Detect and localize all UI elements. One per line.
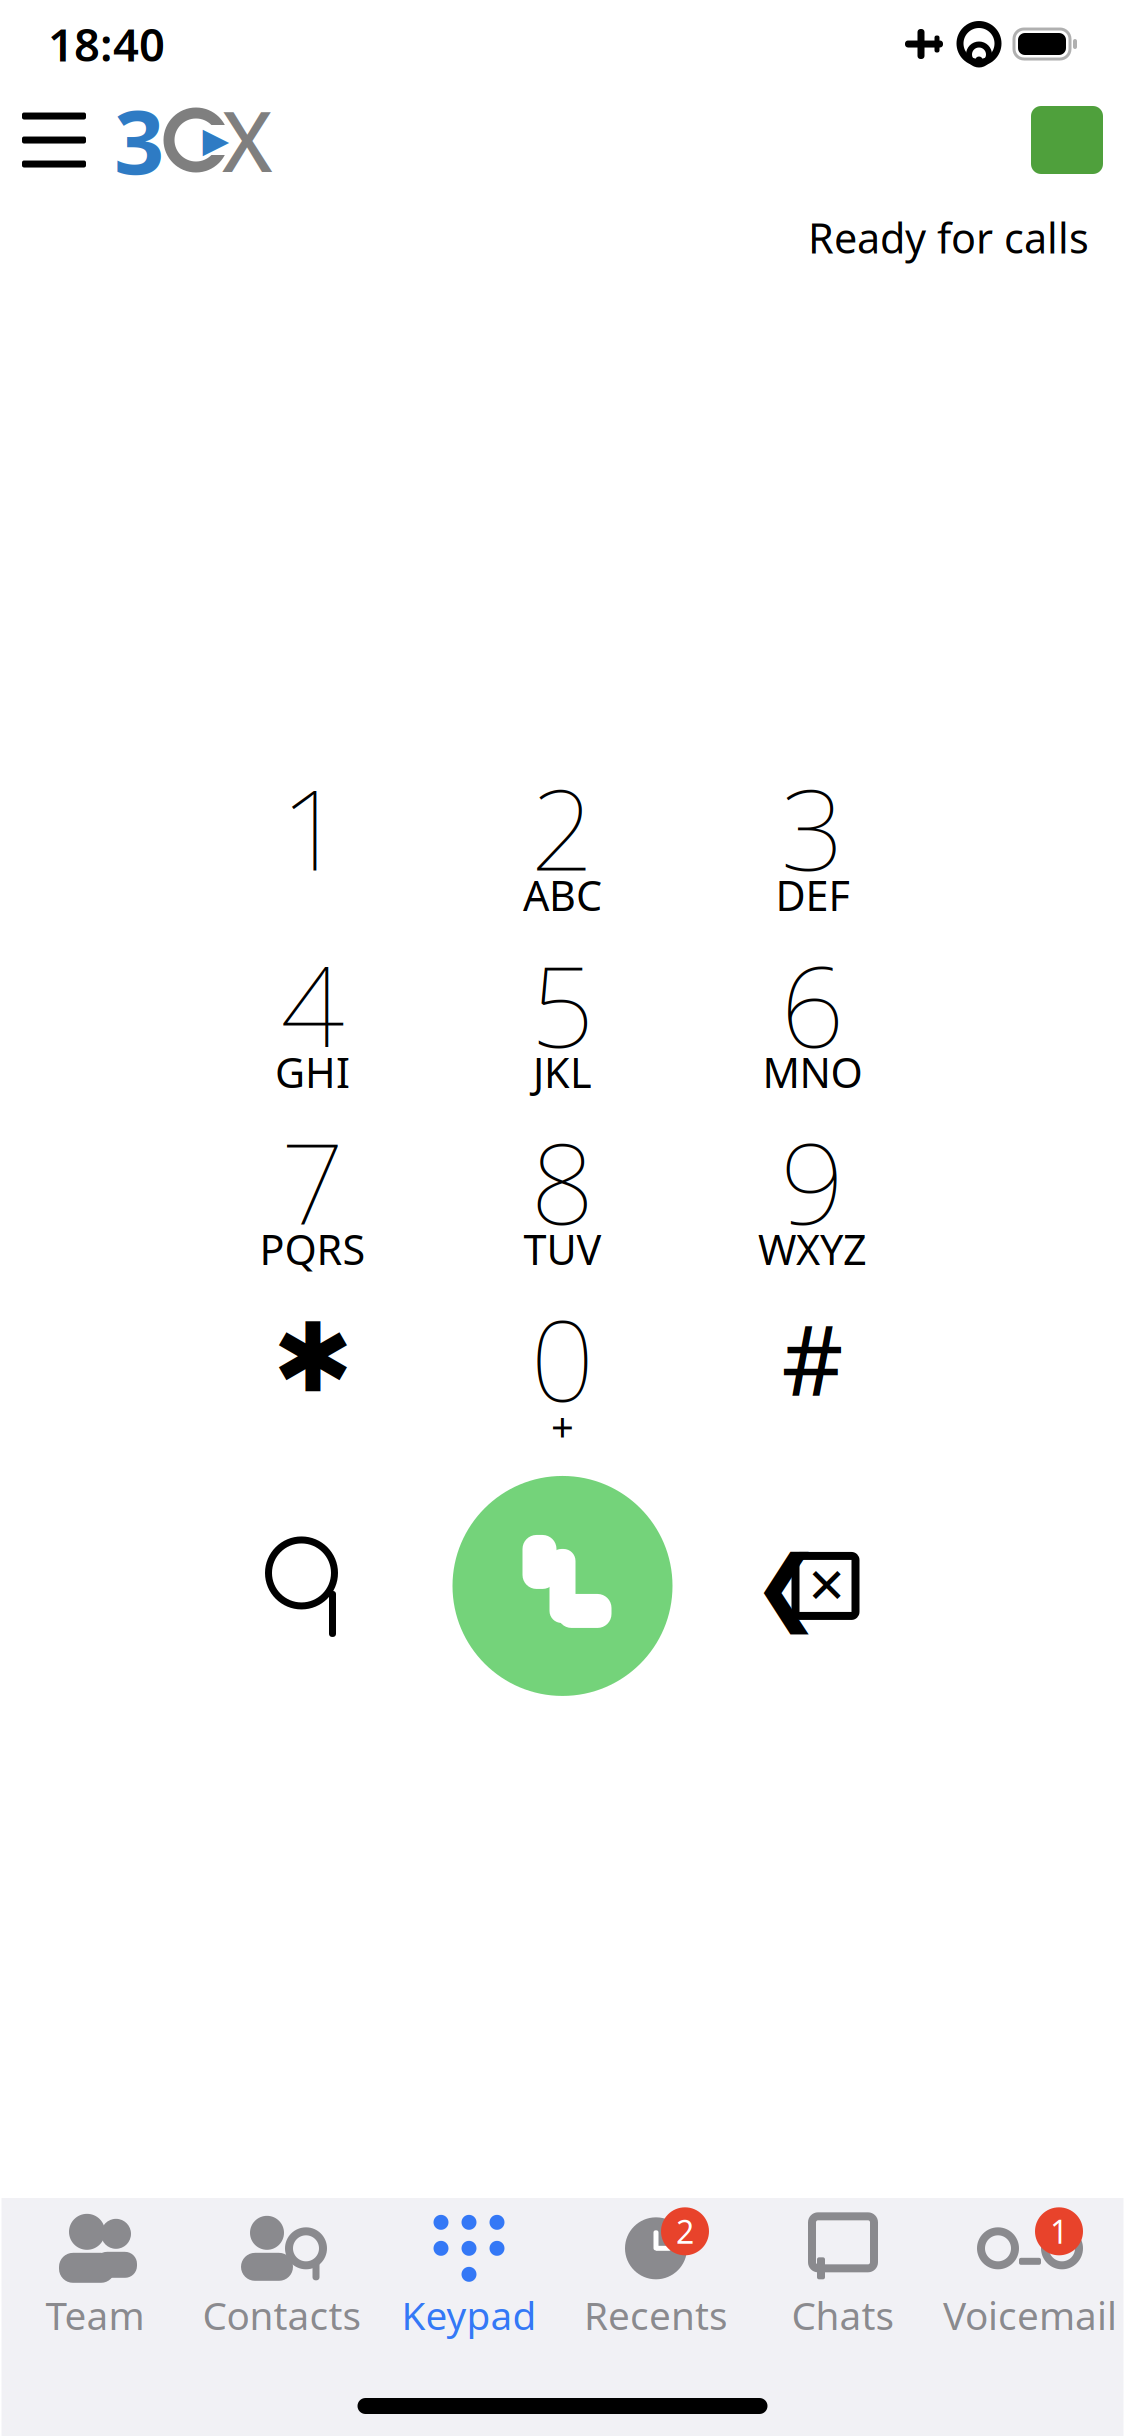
- button[interactable]: Presence status: [1009, 92, 1125, 188]
- staticText: ▶: [202, 120, 229, 160]
- staticText: TUV: [523, 1221, 601, 1276]
- staticText: JKL: [533, 1044, 592, 1099]
- staticText: 0: [530, 1284, 594, 1432]
- staticText: Ready for calls: [808, 210, 1089, 265]
- staticText: 2: [676, 2210, 694, 2253]
- button[interactable]: 8: [437, 1126, 687, 1276]
- button[interactable]: 9: [687, 1126, 937, 1276]
- staticText: 3: [780, 753, 844, 901]
- button[interactable]: Search: [187, 1471, 437, 1701]
- button[interactable]: 7: [187, 1126, 437, 1276]
- button[interactable]: Call: [437, 1471, 687, 1701]
- staticText: Contacts: [202, 2289, 361, 2341]
- staticText: PQRS: [259, 1221, 365, 1276]
- staticText: Recents: [584, 2289, 728, 2341]
- button[interactable]: 5: [437, 949, 687, 1099]
- button[interactable]: 4: [187, 949, 437, 1099]
- staticText: ✕: [806, 1559, 846, 1613]
- button[interactable]: 2: [437, 772, 687, 922]
- button[interactable]: ✱: [187, 1303, 437, 1453]
- staticText: 9: [780, 1107, 844, 1255]
- staticText: 4: [280, 930, 344, 1078]
- button[interactable]: Delete: [687, 1471, 937, 1701]
- staticText: DEF: [775, 867, 849, 922]
- button[interactable]: 1: [936, 2206, 1123, 2346]
- button[interactable]: Keypad: [375, 2206, 562, 2346]
- staticText: Voicemail: [943, 2289, 1117, 2341]
- button[interactable]: 2: [562, 2206, 749, 2346]
- staticText: #: [781, 1294, 843, 1422]
- staticText: ❮: [752, 1539, 821, 1633]
- button[interactable]: Contacts: [188, 2206, 375, 2346]
- staticText: Chats: [791, 2289, 894, 2341]
- staticText: 7: [280, 1107, 344, 1255]
- button[interactable]: Chats: [749, 2206, 936, 2346]
- staticText: X: [222, 85, 273, 195]
- button[interactable]: Team: [1, 2206, 188, 2346]
- button[interactable]: 1: [187, 772, 437, 922]
- staticText: Team: [45, 2289, 144, 2341]
- staticText: 18:40: [48, 14, 165, 74]
- staticText: 3: [114, 82, 164, 198]
- button[interactable]: 0: [437, 1303, 687, 1453]
- staticText: WXYZ: [758, 1221, 867, 1276]
- staticText: GHI: [275, 1044, 350, 1099]
- button[interactable]: 3: [687, 772, 937, 922]
- staticText: [307, 867, 318, 922]
- staticText: MNO: [762, 1044, 862, 1099]
- staticText: 1: [1050, 2210, 1068, 2253]
- button[interactable]: 6: [687, 949, 937, 1099]
- staticText: 2: [530, 753, 594, 901]
- staticText: ✱: [272, 1303, 352, 1412]
- staticText: ABC: [523, 867, 602, 922]
- staticText: 8: [530, 1107, 594, 1255]
- staticText: 1: [280, 753, 344, 901]
- staticText: Keypad: [401, 2289, 536, 2341]
- staticText: 6: [780, 930, 844, 1078]
- staticText: 5: [530, 930, 594, 1078]
- staticText: +: [551, 1399, 574, 1452]
- button[interactable]: Menu: [0, 94, 108, 185]
- button[interactable]: #: [687, 1303, 937, 1453]
